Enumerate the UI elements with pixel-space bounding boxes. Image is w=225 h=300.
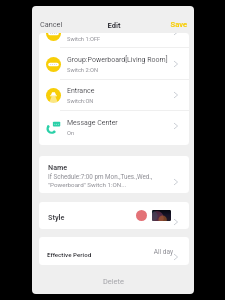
staticText: On <box>67 130 75 137</box>
staticText: Effective Period <box>47 251 92 258</box>
staticText: Style <box>48 213 65 221</box>
other: Group:Powerboard[Living Room] <box>172 59 181 69</box>
other: Switch 1 <box>172 33 181 37</box>
other: Edit name <box>172 177 181 187</box>
staticText: Group:Powerboard[Living Room] <box>67 56 168 64</box>
other: Message Center <box>172 121 181 131</box>
staticText: Switch:ON <box>67 98 94 105</box>
staticText: Entrance <box>67 87 95 95</box>
staticText: Delete <box>103 277 124 286</box>
button[interactable]: Entrance <box>39 79 189 110</box>
staticText: "Powerboard" Switch 1:ON... <box>48 181 127 188</box>
button[interactable]: Delete <box>32 269 194 294</box>
button[interactable]: Message Center <box>39 111 189 142</box>
staticText: If Schedule:7:00 pm Mon.,Tues.,Wed., <box>48 173 153 180</box>
button[interactable]: Group:Powerboard[Living Room] <box>39 48 189 79</box>
other: Entrance <box>172 90 181 100</box>
staticText: Name <box>48 163 68 172</box>
button[interactable] <box>39 202 189 229</box>
staticText: Message Center <box>67 119 118 127</box>
staticText: All day <box>133 248 173 256</box>
button[interactable]: Save <box>147 20 187 29</box>
staticText: Switch 2:ON <box>67 67 98 74</box>
staticText: Switch 1:OFF <box>67 36 101 43</box>
staticText: Edit <box>94 21 134 30</box>
button[interactable]: Switch 1 <box>39 33 189 48</box>
button[interactable] <box>39 156 189 193</box>
other: Choose style <box>172 217 181 227</box>
other: Effective period <box>172 252 181 262</box>
button[interactable] <box>39 237 189 265</box>
button[interactable]: Cancel <box>40 20 63 29</box>
